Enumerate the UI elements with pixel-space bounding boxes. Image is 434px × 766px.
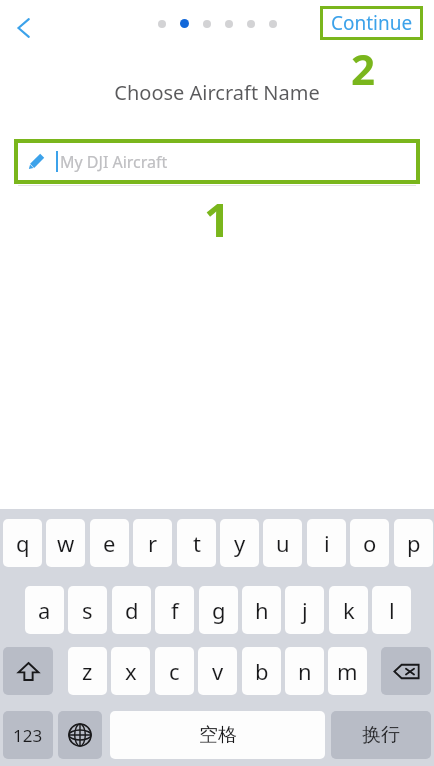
button[interactable]: i [307,519,346,567]
staticText: z [82,656,93,686]
button[interactable]: h [242,586,281,634]
staticText: n [298,656,312,686]
staticText: 换行 [362,723,400,747]
staticText: f [171,595,179,625]
staticText: 1 [204,188,231,251]
button[interactable]: x [111,647,150,695]
staticText: 2 [351,40,376,97]
staticText: m [337,656,358,686]
button[interactable]: q [3,519,42,567]
staticText: x [125,656,137,686]
staticText: My DJI Aircraft [60,151,168,173]
staticText: i [324,528,330,558]
button[interactable]: m [328,647,367,695]
button[interactable]: r [133,519,172,567]
button[interactable]: o [350,519,389,567]
staticText: Choose Aircraft Name [114,79,320,106]
button[interactable]: k [329,586,368,634]
staticText: k [343,595,355,625]
staticText: o [363,528,377,558]
staticText: d [125,595,139,625]
staticText: s [82,595,93,625]
staticText: b [255,656,269,686]
button[interactable]: j [285,586,324,634]
button[interactable]: w [46,519,85,567]
staticText: v [212,656,224,686]
button[interactable]: a [25,586,64,634]
button[interactable]: Shift [3,647,53,695]
button[interactable]: 空格 [110,711,325,759]
button[interactable]: Back [1,5,47,51]
staticText: h [255,595,269,625]
staticText: l [389,595,395,625]
button[interactable]: z [68,647,107,695]
staticText: c [169,656,180,686]
staticText: y [234,528,246,558]
staticText: a [38,595,51,625]
button[interactable]: b [242,647,281,695]
button[interactable]: l [372,586,411,634]
staticText: g [212,595,226,625]
button[interactable]: u [263,519,302,567]
button[interactable]: n [285,647,324,695]
staticText: w [57,528,75,558]
staticText: q [16,528,30,558]
staticText: e [103,528,116,558]
staticText: j [302,595,308,625]
button[interactable]: t [177,519,216,567]
button[interactable]: g [199,586,238,634]
staticText: 123 [13,724,43,747]
button[interactable]: 换行 [331,711,431,759]
staticText: p [407,528,421,558]
button[interactable]: f [155,586,194,634]
button[interactable]: v [198,647,237,695]
staticText: u [276,528,290,558]
button[interactable]: d [112,586,151,634]
button[interactable]: c [155,647,194,695]
button[interactable]: y [220,519,259,567]
button[interactable]: s [68,586,107,634]
button[interactable]: My DJI Aircraft [18,143,416,180]
staticText: 空格 [199,723,237,747]
staticText: Continue [331,10,413,36]
button[interactable]: Switch keyboard [58,711,102,759]
button[interactable]: p [394,519,433,567]
button[interactable]: Continue [323,9,420,37]
staticText: t [193,528,201,558]
button[interactable]: e [90,519,129,567]
button[interactable]: 123 [3,711,53,759]
button[interactable]: Backspace [381,647,431,695]
staticText: r [148,528,158,558]
